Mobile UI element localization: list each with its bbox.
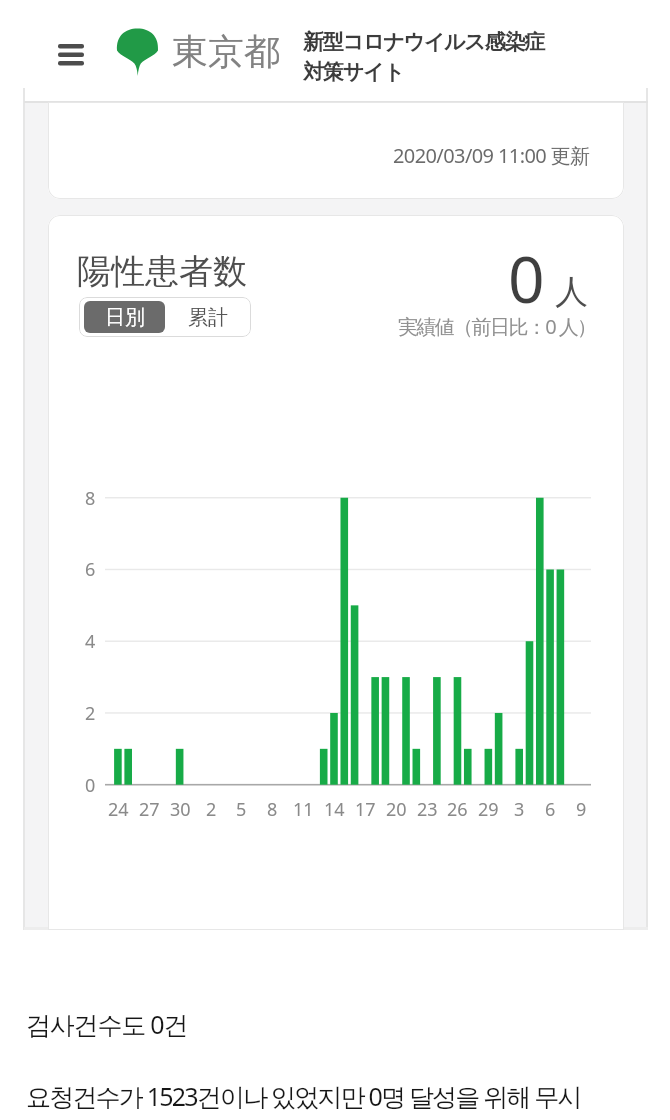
staticText: 30 [170,797,191,822]
staticText: 8 [85,486,96,511]
staticText: 11 [293,797,314,822]
staticText: 4 [85,629,96,654]
staticText: 陽性患者数 [77,250,247,293]
staticText: 20 [386,797,407,822]
staticText: 人 [555,271,588,313]
staticText: 新型コロナウイルス感染症 [303,29,545,55]
staticText: 東京都 [172,29,280,74]
button[interactable]: 累計 [165,297,251,337]
staticText: 6 [85,557,96,582]
staticText: 5 [236,797,247,822]
staticText: 日別 [105,305,145,330]
staticText: 17 [355,797,376,822]
staticText: 14 [324,797,345,822]
staticText: 0 [508,235,545,322]
staticText: 6 [545,797,556,822]
staticText: 23 [417,797,438,822]
staticText: 8 [267,797,278,822]
staticText: 2 [85,701,96,726]
staticText: 2020/03/09 11:00 更新 [393,142,590,169]
staticText: 24 [108,797,129,822]
staticText: 0 [85,773,96,798]
staticText: 29 [478,797,499,822]
staticText: 요청건수가 1523건이나 있었지만 0명 달성을 위해 무시 [26,1079,581,1113]
staticText: 27 [139,797,160,822]
staticText: 26 [447,797,468,822]
staticText: 3 [514,797,525,822]
staticText: 2 [206,797,217,822]
button[interactable]: 日別 [84,301,165,333]
button[interactable]: 2020/03/09 11:00 更新 [48,102,624,199]
staticText: 累計 [188,305,228,330]
staticText: 対策サイト [303,59,404,85]
button[interactable] [54,38,90,72]
staticText: 実績値（前日比：0 人） [398,313,596,340]
staticText: 검사건수도 0건 [26,1007,188,1041]
staticText: 9 [576,797,587,822]
